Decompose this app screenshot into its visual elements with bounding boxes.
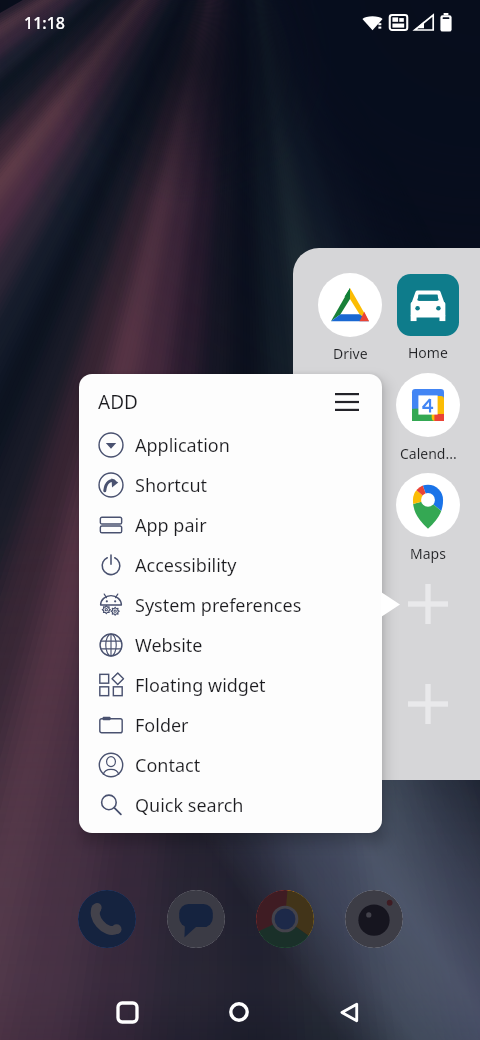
staticText: Application [135,433,230,458]
button[interactable]: Messages [167,890,225,948]
button[interactable]: Application [79,425,382,465]
button[interactable]: Recents [103,988,151,1036]
button[interactable]: Accessibility [79,545,382,585]
staticText: 11:18 [24,12,65,34]
button[interactable]: System preferences [79,585,382,625]
button[interactable]: Floating widget [79,665,382,705]
button[interactable]: Home [397,274,459,362]
staticText: Shortcut [135,473,208,498]
button[interactable]: Menu [330,385,364,419]
staticText: Quick search [135,793,244,818]
button[interactable]: Camera [345,890,403,948]
staticText: Floating widget [135,673,266,698]
button[interactable]: Add app [406,582,450,626]
staticText: Contact [135,753,201,778]
button[interactable]: Contact [79,745,382,785]
staticText: Website [135,633,203,658]
button[interactable]: Home [215,988,263,1036]
staticText: App pair [135,513,207,538]
button[interactable]: App pair [79,505,382,545]
button[interactable]: Quick search [79,785,382,825]
staticText: Accessibility [135,553,237,578]
button[interactable]: Website [79,625,382,665]
button[interactable]: Back [325,988,373,1036]
button[interactable]: Chrome [256,890,314,948]
button[interactable]: Folder [79,705,382,745]
button[interactable]: Maps [396,473,460,563]
staticText: Home [408,343,448,362]
staticText: Calend... [400,444,457,463]
staticText: Maps [410,544,446,563]
staticText: Folder [135,713,189,738]
staticText: Drive [333,344,368,363]
button[interactable]: Drive [318,273,382,363]
button[interactable]: Calend... [396,373,460,463]
button[interactable]: Shortcut [79,465,382,505]
staticText: System preferences [135,593,302,618]
staticText: ADD [98,389,138,415]
button[interactable]: Phone [78,890,136,948]
button[interactable]: Add app [406,682,450,726]
